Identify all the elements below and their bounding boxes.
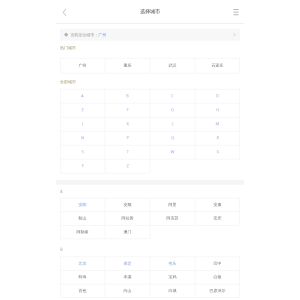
button[interactable]: H <box>195 103 240 117</box>
button[interactable]: T <box>105 145 150 159</box>
button[interactable]: 鞍山 <box>60 211 105 225</box>
staticText: 白银 <box>213 274 221 279</box>
staticText: B <box>60 246 63 252</box>
button[interactable]: E <box>60 103 105 117</box>
button[interactable]: 宝鸡 <box>150 270 195 284</box>
button[interactable]: 安顺 <box>105 198 150 211</box>
staticText: 安顺 <box>123 202 131 207</box>
staticText: Y <box>81 163 83 168</box>
staticText: 包头 <box>168 261 176 266</box>
staticText: X <box>216 149 218 154</box>
staticText: 广州 <box>98 32 106 37</box>
staticText: 阿克苏 <box>166 216 178 221</box>
staticText: D <box>216 93 219 98</box>
button[interactable]: X <box>195 145 240 159</box>
staticText: 热门城市 <box>60 45 76 50</box>
button[interactable]: 澳门 <box>105 225 150 239</box>
button[interactable]: 蚌埠 <box>60 270 105 284</box>
staticText: 百色 <box>78 288 86 293</box>
button[interactable]: J <box>60 117 105 131</box>
staticText: L <box>171 121 173 126</box>
staticText: G <box>171 107 174 112</box>
staticText: B <box>126 93 129 98</box>
button[interactable]: M <box>195 117 240 131</box>
button[interactable]: 保定 <box>105 257 150 270</box>
button[interactable]: L <box>150 117 195 131</box>
staticText: 白城 <box>168 288 176 293</box>
staticText: 当前定位城市： <box>70 32 98 37</box>
staticText: 北京 <box>78 261 86 266</box>
button[interactable]: Q <box>150 131 195 145</box>
staticText: M <box>215 121 219 126</box>
staticText: A <box>81 93 84 98</box>
staticText: 广州 <box>78 63 86 68</box>
button[interactable]: Z <box>105 159 150 173</box>
button[interactable]: 广州 <box>60 58 105 73</box>
staticText: C <box>171 93 174 98</box>
button[interactable]: K <box>105 117 150 131</box>
staticText: E <box>81 107 83 112</box>
button[interactable]: A <box>60 89 105 103</box>
button[interactable]: 白银 <box>195 270 240 284</box>
staticText: H <box>216 107 219 112</box>
button[interactable]: 阿勒泰 <box>60 225 105 239</box>
staticText: 安阳 <box>78 202 86 207</box>
staticText: 阿拉善 <box>121 216 133 221</box>
staticText: 阿勒泰 <box>76 229 88 234</box>
staticText: A <box>60 189 63 194</box>
button[interactable]: B <box>105 89 150 103</box>
button[interactable]: 百色 <box>60 284 105 297</box>
staticText: 保定 <box>123 261 131 266</box>
staticText: 阿里 <box>168 202 176 207</box>
button[interactable]: F <box>105 103 150 117</box>
staticText: Z <box>126 163 128 168</box>
button[interactable]: 武汉 <box>150 58 195 73</box>
staticText: N <box>81 135 84 140</box>
button[interactable]: 石家庄 <box>195 58 240 73</box>
staticText: S <box>81 149 83 154</box>
button[interactable]: 巴中 <box>195 257 240 270</box>
button[interactable]: 阿拉善 <box>105 211 150 225</box>
staticText: 安康 <box>213 202 221 207</box>
staticText: 澳门 <box>123 229 131 234</box>
staticText: 选择城市 <box>140 8 160 15</box>
button[interactable]: D <box>195 89 240 103</box>
button[interactable]: R <box>195 131 240 145</box>
button[interactable]: G <box>150 103 195 117</box>
button[interactable]: 安康 <box>195 198 240 211</box>
button[interactable]: S <box>60 145 105 159</box>
button[interactable]: P <box>105 131 150 145</box>
button[interactable]: 当前定位城市： <box>60 29 240 41</box>
button[interactable]: 巴彦淖尔 <box>195 284 240 297</box>
staticText: 本溪 <box>123 274 131 279</box>
staticText: 武汉 <box>168 63 176 68</box>
staticText: 巴彦淖尔 <box>209 288 225 293</box>
button[interactable]: 阿里 <box>150 198 195 211</box>
button[interactable]: 白城 <box>150 284 195 297</box>
button[interactable]: W <box>150 145 195 159</box>
button[interactable]: 本溪 <box>105 270 150 284</box>
button[interactable]: 重庆 <box>105 58 150 73</box>
button[interactable]: 北京 <box>60 257 105 270</box>
staticText: 重庆 <box>123 63 131 68</box>
button[interactable]: Y <box>60 159 105 173</box>
staticText: 宝鸡 <box>168 274 176 279</box>
staticText: P <box>126 135 128 140</box>
button[interactable]: N <box>60 131 105 145</box>
staticText: K <box>126 121 128 126</box>
button[interactable]: 安阳 <box>60 198 105 211</box>
button[interactable]: 返回 <box>58 0 70 23</box>
button[interactable]: 白山 <box>105 284 150 297</box>
button[interactable]: 包头 <box>150 257 195 270</box>
staticText: 鞍山 <box>78 216 86 221</box>
button[interactable]: 阿克苏 <box>150 211 195 225</box>
staticText: 安庆 <box>213 216 221 221</box>
button[interactable]: C <box>150 89 195 103</box>
staticText: 蚌埠 <box>78 274 86 279</box>
button[interactable]: 安庆 <box>195 211 240 225</box>
button[interactable]: 菜单 <box>230 0 242 23</box>
